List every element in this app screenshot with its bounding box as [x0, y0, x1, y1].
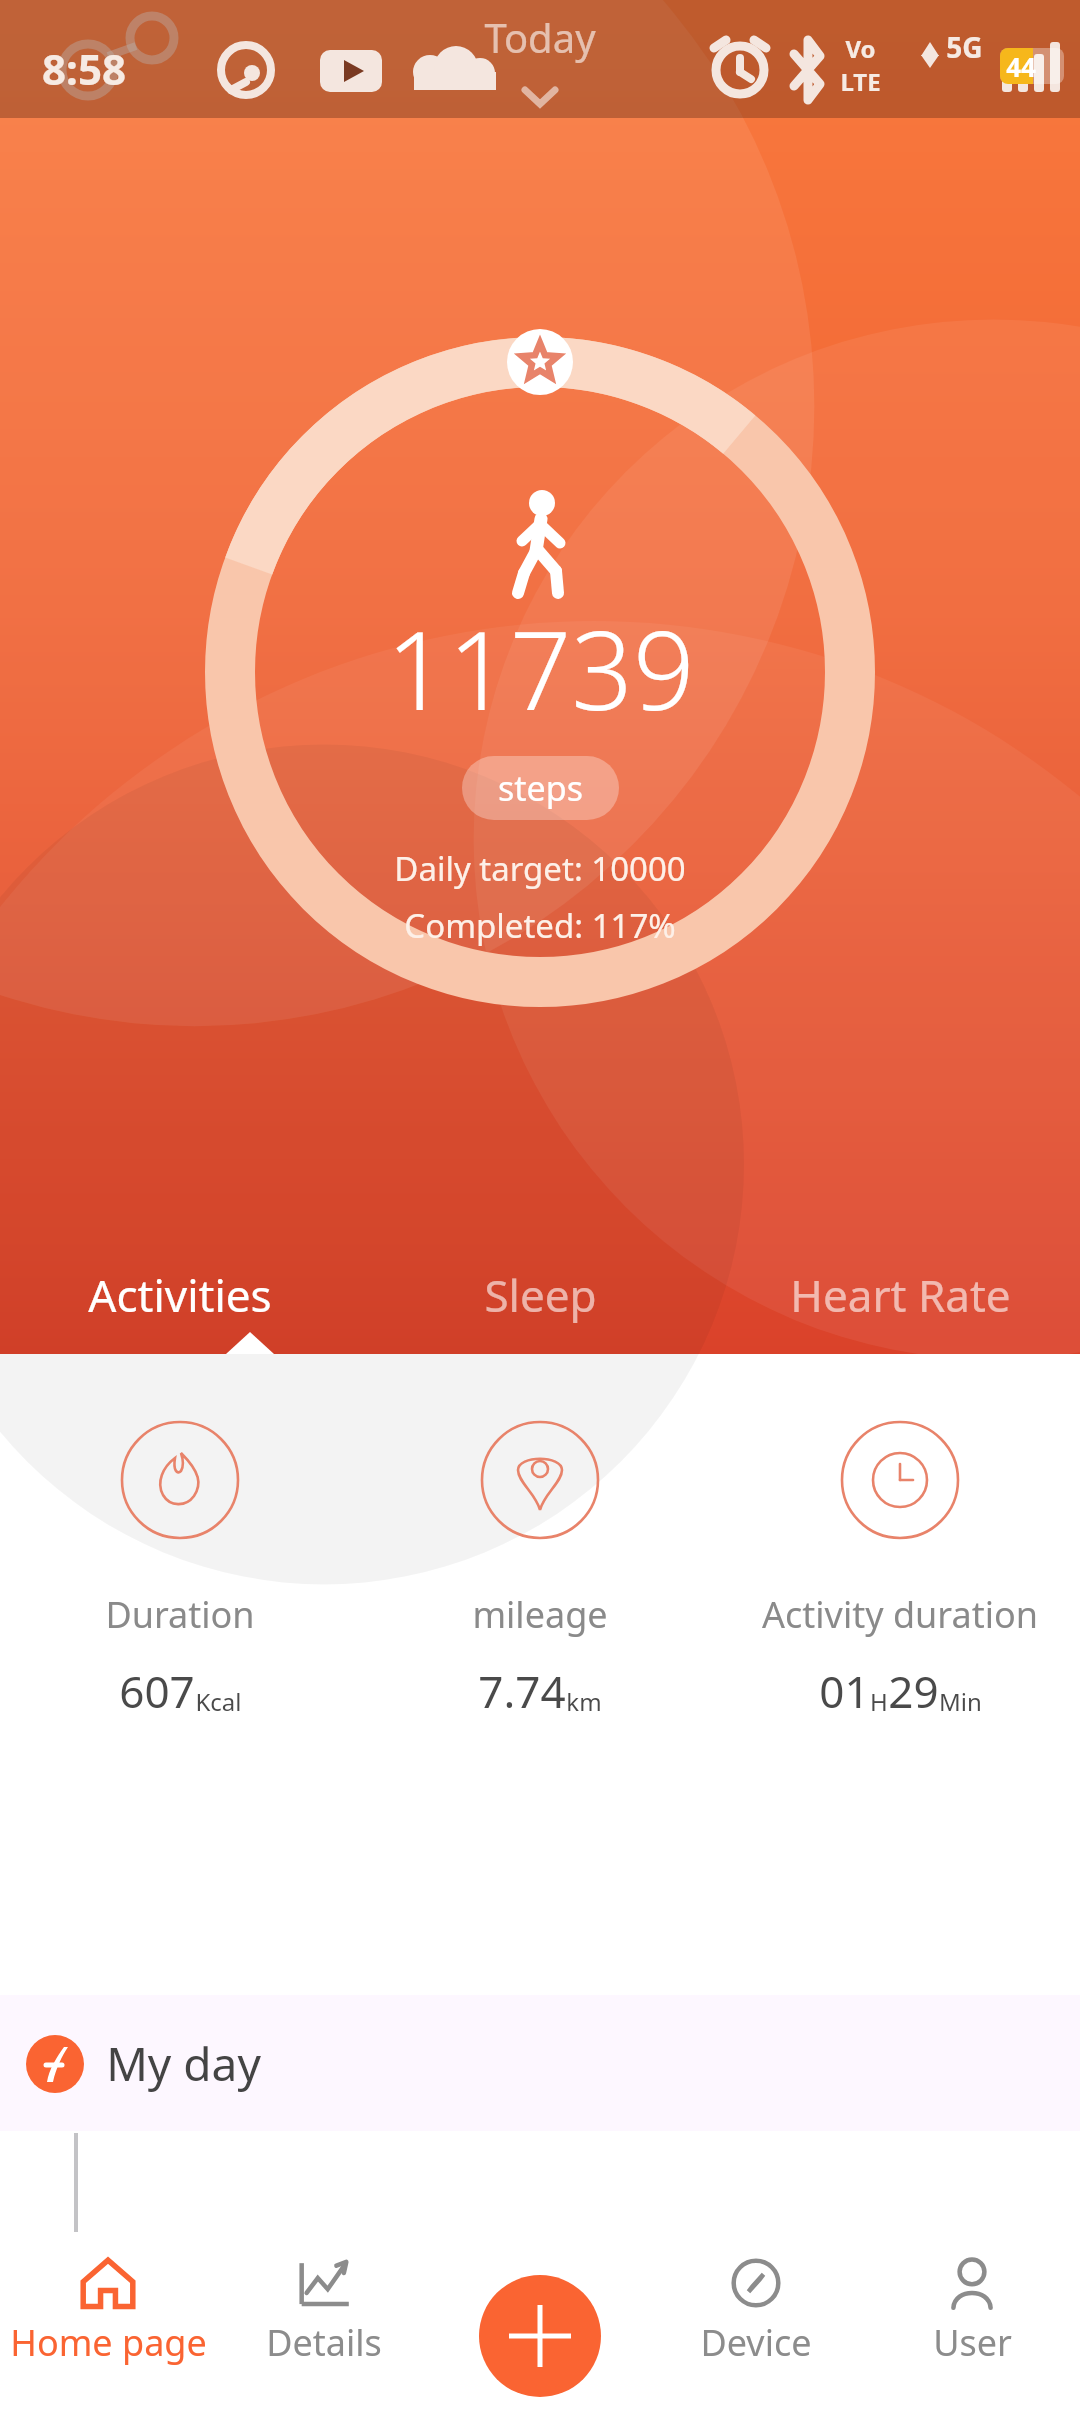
staticText: 44	[1006, 49, 1036, 84]
staticText: Device	[700, 2318, 812, 2367]
staticText: 7.74	[478, 1661, 566, 1721]
staticText: km	[566, 1685, 602, 1718]
staticText: LTE	[840, 65, 881, 98]
staticText: Heart Rate	[790, 1265, 1011, 1325]
staticText: Details	[266, 2318, 382, 2367]
button[interactable]: User	[864, 2232, 1080, 2412]
staticText: Daily target: 10000	[394, 846, 686, 891]
staticText: Sleep	[484, 1265, 597, 1325]
button[interactable]: My day	[0, 1995, 1080, 2131]
button[interactable]: Sleep	[360, 1255, 720, 1335]
staticText: 01	[819, 1661, 870, 1721]
button[interactable]: Add	[479, 2275, 601, 2397]
staticText: Activities	[88, 1265, 272, 1325]
staticText: Kcal	[195, 1685, 242, 1718]
staticText: Home page	[10, 2318, 207, 2367]
staticText: Today	[484, 10, 596, 64]
staticText: Min	[939, 1685, 982, 1718]
button[interactable]: Home page	[0, 2232, 216, 2412]
button[interactable]: mileage	[360, 1420, 720, 1721]
staticText: Completed: 117%	[404, 903, 676, 948]
staticText: Vo	[845, 32, 876, 65]
button[interactable]: Details	[216, 2232, 432, 2412]
staticText: 29	[888, 1661, 939, 1721]
staticText: Duration	[105, 1590, 255, 1639]
staticText: 5G	[946, 28, 983, 66]
staticText: Activity duration	[762, 1590, 1038, 1639]
button[interactable]: Heart Rate	[720, 1255, 1080, 1335]
button[interactable]: Device	[648, 2232, 864, 2412]
button[interactable]: Activity duration	[720, 1420, 1080, 1721]
staticText: 607	[119, 1661, 195, 1721]
staticText: mileage	[472, 1590, 608, 1639]
staticText: User	[933, 2318, 1012, 2367]
staticText: steps	[498, 765, 583, 811]
button[interactable]: Duration	[0, 1420, 360, 1721]
staticText: H	[870, 1685, 888, 1718]
staticText: 11739	[386, 595, 695, 742]
staticText: 8:58	[42, 40, 126, 97]
button[interactable]: Activities	[0, 1255, 360, 1335]
staticText: My day	[106, 2032, 261, 2095]
